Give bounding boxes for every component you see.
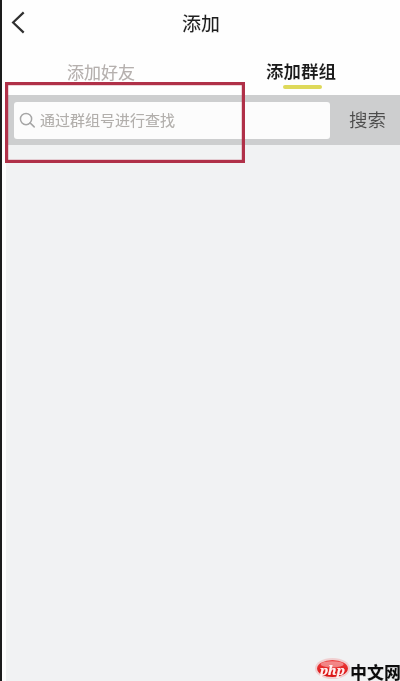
staticText: 添加群组	[266, 58, 336, 83]
staticText: 搜索	[349, 106, 387, 133]
staticText: php	[320, 661, 345, 679]
staticText: 添加好友	[67, 59, 135, 84]
staticText: 添加	[182, 9, 221, 37]
staticText: 通过群组号进行查找	[40, 109, 176, 131]
button[interactable]: 添加好友	[0, 48, 200, 95]
button[interactable]: 通过群组号进行查找	[14, 102, 330, 139]
button[interactable]: 搜索	[333, 95, 400, 145]
button[interactable]: Back	[0, 0, 40, 45]
staticText: 中文网	[350, 659, 400, 681]
button[interactable]: 添加群组	[200, 48, 400, 95]
